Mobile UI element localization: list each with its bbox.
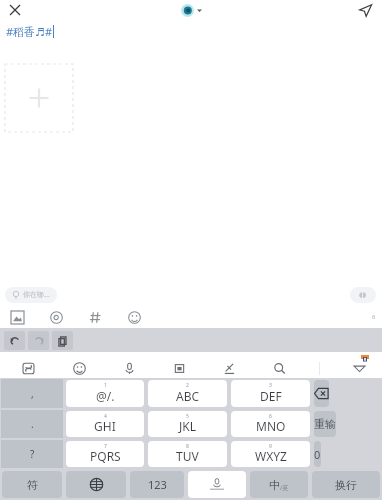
staticText: ?: [30, 447, 35, 461]
button[interactable]: 你在哪...: [5, 287, 57, 303]
button[interactable]: Chinese English toggle: [250, 471, 308, 498]
staticText: 6: [372, 313, 376, 321]
button[interactable]: 1: [66, 380, 144, 407]
staticText: 符: [27, 478, 38, 492]
staticText: 0: [314, 447, 321, 462]
button[interactable]: Hide keyboard: [350, 359, 368, 377]
button[interactable]: 9: [231, 441, 310, 467]
staticText: GHI: [94, 418, 116, 434]
staticText: 换行: [335, 478, 357, 492]
staticText: 重输: [314, 417, 336, 431]
staticText: WXYZ: [255, 448, 287, 464]
button[interactable]: 7: [66, 441, 144, 467]
button[interactable]: 4: [66, 411, 144, 437]
button[interactable]: Language: [66, 471, 126, 498]
staticText: DEF: [260, 388, 282, 404]
button[interactable]: 123: [130, 471, 184, 498]
staticText: 你在哪...: [23, 290, 50, 300]
button[interactable]: Redo: [28, 331, 49, 350]
button[interactable]: Add image: [5, 64, 73, 132]
staticText: JKL: [179, 418, 196, 434]
button[interactable]: 8: [148, 441, 227, 467]
staticText: .: [31, 417, 34, 431]
button[interactable]: 2: [148, 380, 227, 407]
staticText: 8: [186, 443, 189, 450]
staticText: 3: [269, 382, 272, 389]
staticText: 7: [104, 443, 107, 450]
button[interactable]: Search: [269, 358, 289, 378]
button[interactable]: Topic: [86, 308, 104, 326]
button[interactable]: 换行: [312, 471, 380, 498]
button[interactable]: Add photo: [8, 308, 26, 326]
staticText: 9: [269, 443, 272, 450]
button[interactable]: Space: [188, 471, 246, 498]
button[interactable]: Voice input: [119, 358, 139, 378]
staticText: 4: [104, 413, 107, 420]
button[interactable]: 0: [314, 441, 321, 467]
staticText: 123: [148, 477, 167, 492]
button[interactable]: Paste: [52, 331, 73, 350]
staticText: ,: [31, 387, 34, 401]
button[interactable]: Visibility: [350, 287, 376, 303]
staticText: TUV: [176, 448, 199, 464]
staticText: 1: [104, 382, 107, 389]
staticText: ABC: [176, 388, 200, 404]
button[interactable]: 6: [231, 411, 310, 437]
staticText: 6: [269, 413, 272, 420]
button[interactable]: Clipboard: [169, 358, 189, 378]
button[interactable]: Emoji: [69, 358, 89, 378]
button[interactable]: 符: [2, 471, 62, 498]
staticText: 5: [186, 413, 189, 420]
button[interactable]: 3: [231, 380, 310, 407]
staticText: /英: [280, 484, 289, 492]
staticText: 2: [186, 382, 189, 389]
button[interactable]: 重输: [314, 411, 336, 437]
staticText: 中: [269, 478, 280, 492]
button[interactable]: Send: [356, 1, 374, 19]
button[interactable]: Account selector: [181, 4, 202, 17]
staticText: ◖◗: [359, 291, 367, 299]
button[interactable]: Emoji: [125, 308, 143, 326]
staticText: #稻香♬#: [6, 24, 53, 39]
button[interactable]: Handwriting: [219, 358, 239, 378]
button[interactable]: 5: [148, 411, 227, 437]
button[interactable]: Mention: [47, 308, 65, 326]
button[interactable]: Backspace: [314, 380, 329, 407]
staticText: PQRS: [90, 448, 121, 464]
button[interactable]: Sogou input: [18, 358, 38, 378]
staticText: MNO: [256, 418, 286, 434]
button[interactable]: Close: [6, 1, 24, 19]
button[interactable]: Undo: [4, 331, 25, 350]
button[interactable]: ?: [1, 440, 63, 468]
staticText: @/.: [96, 388, 115, 404]
